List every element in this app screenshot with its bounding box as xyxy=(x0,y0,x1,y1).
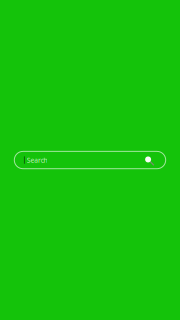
staticText: Search xyxy=(27,156,47,164)
button[interactable]: Search xyxy=(14,151,166,169)
